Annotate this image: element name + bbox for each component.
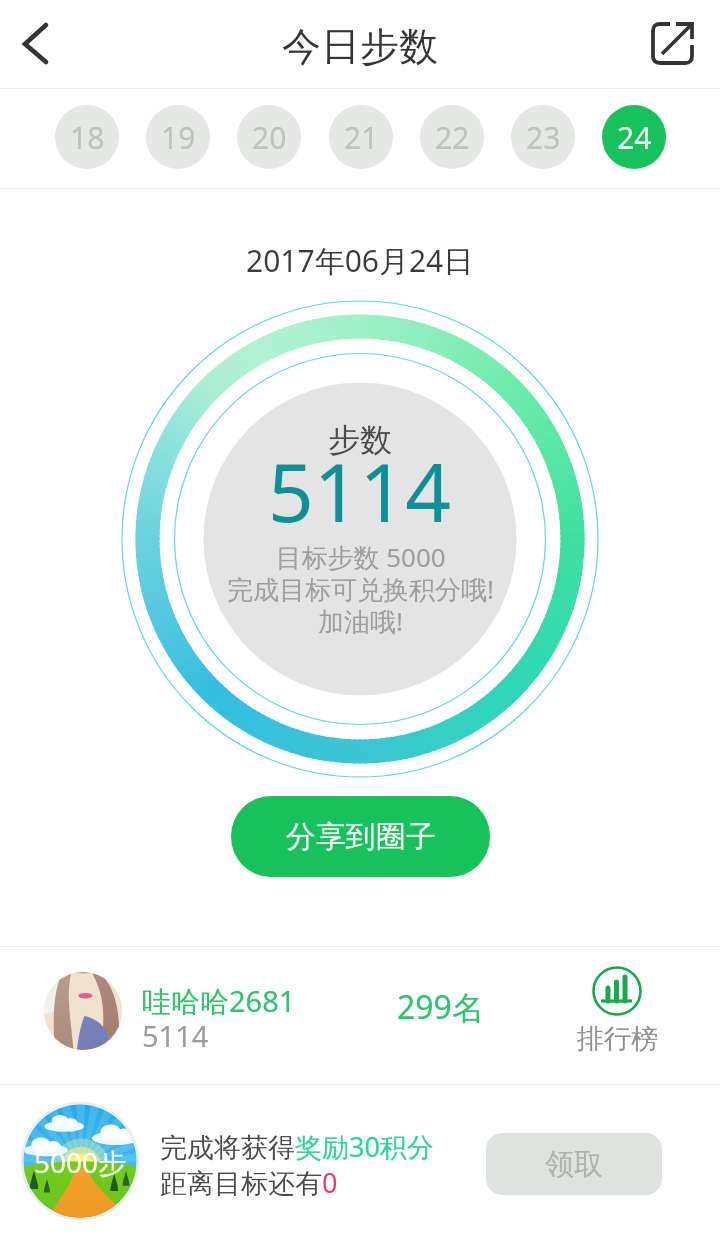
- staticText: 分享到圈子: [286, 818, 436, 856]
- staticText: 今日步数: [282, 22, 438, 71]
- staticText: 22: [435, 117, 470, 158]
- staticText: 目标步数 5000 完成目标可兑换积分哦! 加油哦!: [227, 539, 494, 639]
- staticText: 领取: [545, 1146, 603, 1183]
- button[interactable]: 21: [329, 105, 393, 169]
- button[interactable]: 20: [237, 105, 301, 169]
- staticText: 排行榜: [577, 1022, 658, 1056]
- staticText: 5114: [142, 1016, 209, 1055]
- button[interactable]: 分享到圈子: [231, 796, 490, 877]
- staticText: 19: [161, 117, 196, 158]
- button[interactable]: 5000步奖章: [21, 1102, 139, 1220]
- button[interactable]: 23: [511, 105, 575, 169]
- staticText: 5000步: [34, 1143, 127, 1181]
- button[interactable]: Share: [637, 8, 707, 78]
- button[interactable]: 排行榜: [552, 953, 682, 1056]
- staticText: 299名: [397, 985, 484, 1029]
- staticText: 2017年06月24日: [246, 240, 474, 281]
- staticText: 23: [526, 117, 561, 158]
- button[interactable]: 18: [55, 105, 119, 169]
- staticText: 距离目标还有0: [160, 1164, 338, 1201]
- staticText: 18: [70, 117, 105, 158]
- button[interactable]: 哇哈哈2681: [142, 973, 362, 1053]
- button[interactable]: 用户头像: [44, 972, 122, 1050]
- staticText: 20: [252, 117, 287, 158]
- button[interactable]: 22: [420, 105, 484, 169]
- button[interactable]: 24: [602, 105, 666, 169]
- button[interactable]: 领取: [486, 1133, 662, 1195]
- staticText: 5114: [268, 436, 452, 545]
- button[interactable]: 299名: [390, 985, 490, 1029]
- staticText: 完成将获得奖励30积分: [160, 1128, 434, 1165]
- staticText: 哇哈哈2681: [142, 981, 296, 1021]
- button[interactable]: Back: [4, 10, 72, 78]
- staticText: 21: [344, 117, 379, 158]
- button[interactable]: 19: [146, 105, 210, 169]
- staticText: 步数: [328, 420, 392, 460]
- staticText: 24: [617, 117, 652, 158]
